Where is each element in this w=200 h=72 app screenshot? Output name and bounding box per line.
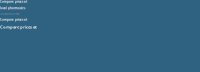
staticText: Save up to 80% on your meds (0, 13, 20, 15)
staticText: Compare prices at (0, 0, 27, 3)
staticText: Compare prices at (0, 24, 37, 30)
staticText: local pharmacies (0, 6, 25, 10)
staticText: Compare prices at (0, 18, 27, 21)
